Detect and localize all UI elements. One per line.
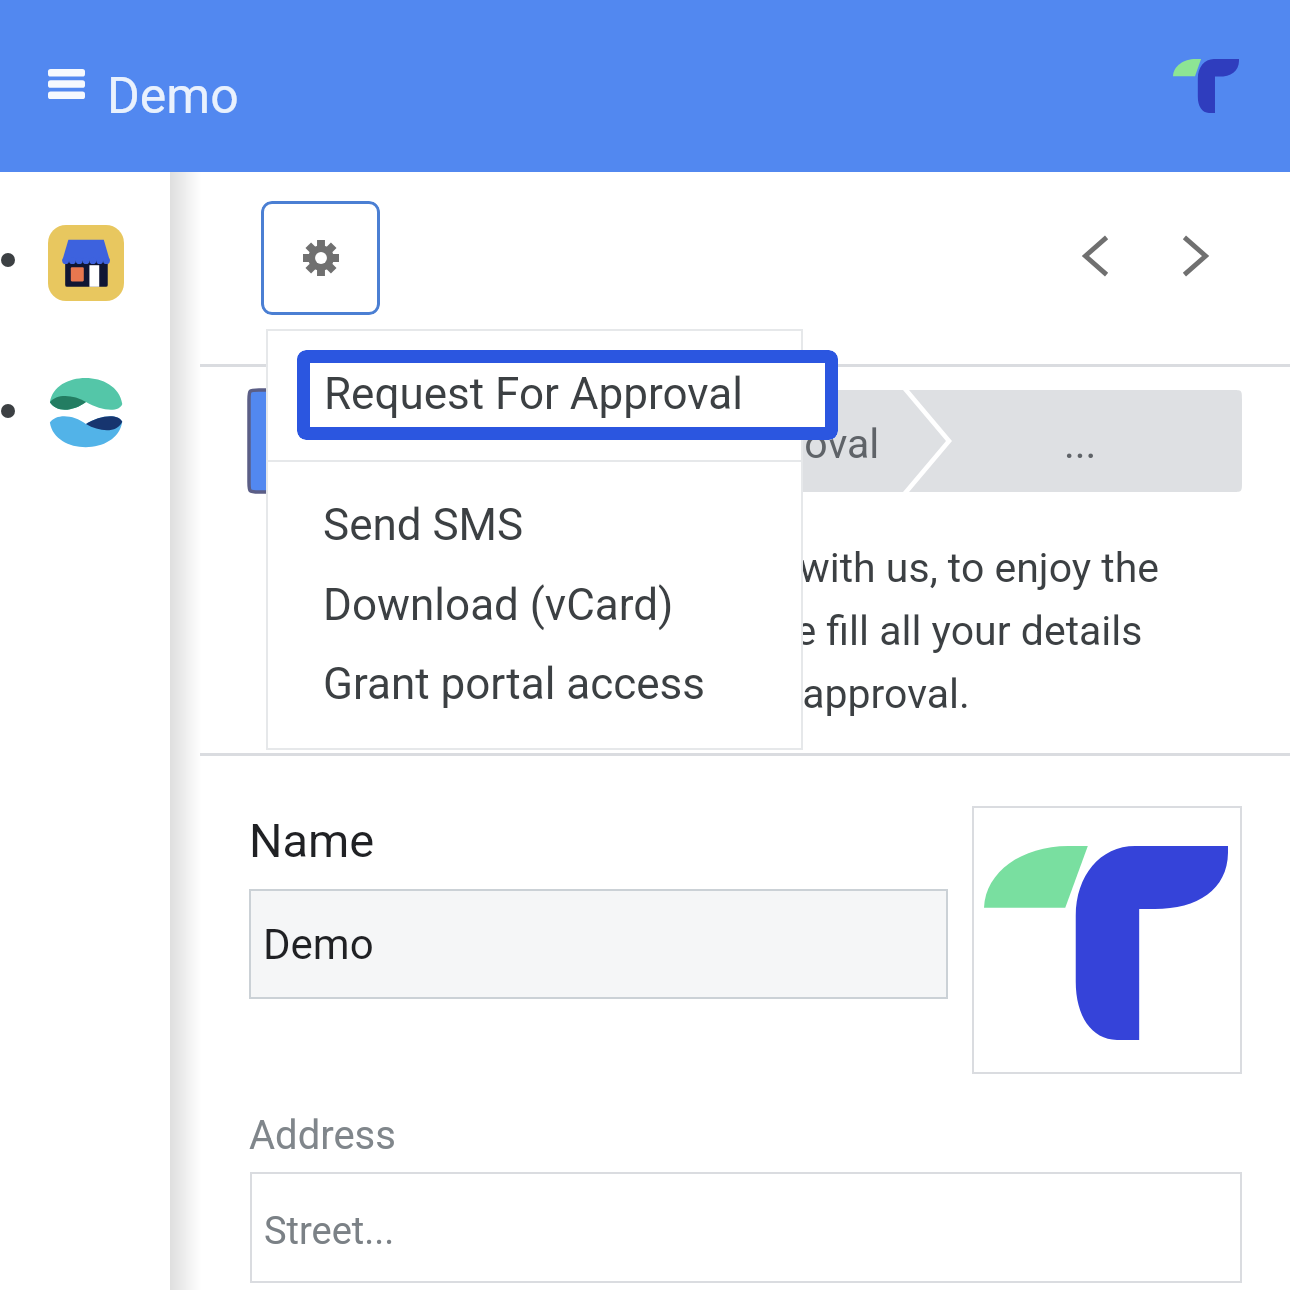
staticText: and submit for approval. [526,670,970,718]
button[interactable]: Menu [26,53,106,115]
staticText: Grant portal access [323,658,706,710]
button[interactable]: Previous [1060,220,1132,292]
staticText: Registration [281,420,501,468]
button[interactable]: Request For Approval [297,350,838,440]
staticText: Demo [263,920,374,969]
staticText: Hello, Register with us, to enjoy the [526,544,1160,592]
button[interactable]: Demo [249,889,948,999]
button[interactable]: Send SMS [266,489,803,561]
button[interactable]: Settings [261,201,380,315]
staticText: Request For Approval [489,420,880,468]
staticText: Request For Approval [324,368,743,420]
staticText: Demo [107,67,239,126]
staticText: Name [249,813,375,868]
button[interactable]: Grant portal access [266,648,803,720]
staticText: Address [249,1112,396,1159]
button[interactable]: Store app [0,215,140,311]
button[interactable]: Street... [250,1172,1242,1283]
button[interactable] [266,329,803,459]
button[interactable]: Download (vCard) [266,569,803,641]
staticText: Send SMS [323,499,524,551]
button[interactable]: Analytics app [0,365,140,461]
staticText: Download (vCard) [323,579,674,631]
staticText: benefits. Please fill all your details [526,607,1143,655]
staticText: ... [1064,420,1097,468]
button[interactable]: Next [1159,220,1231,292]
staticText: Street... [264,1209,395,1254]
